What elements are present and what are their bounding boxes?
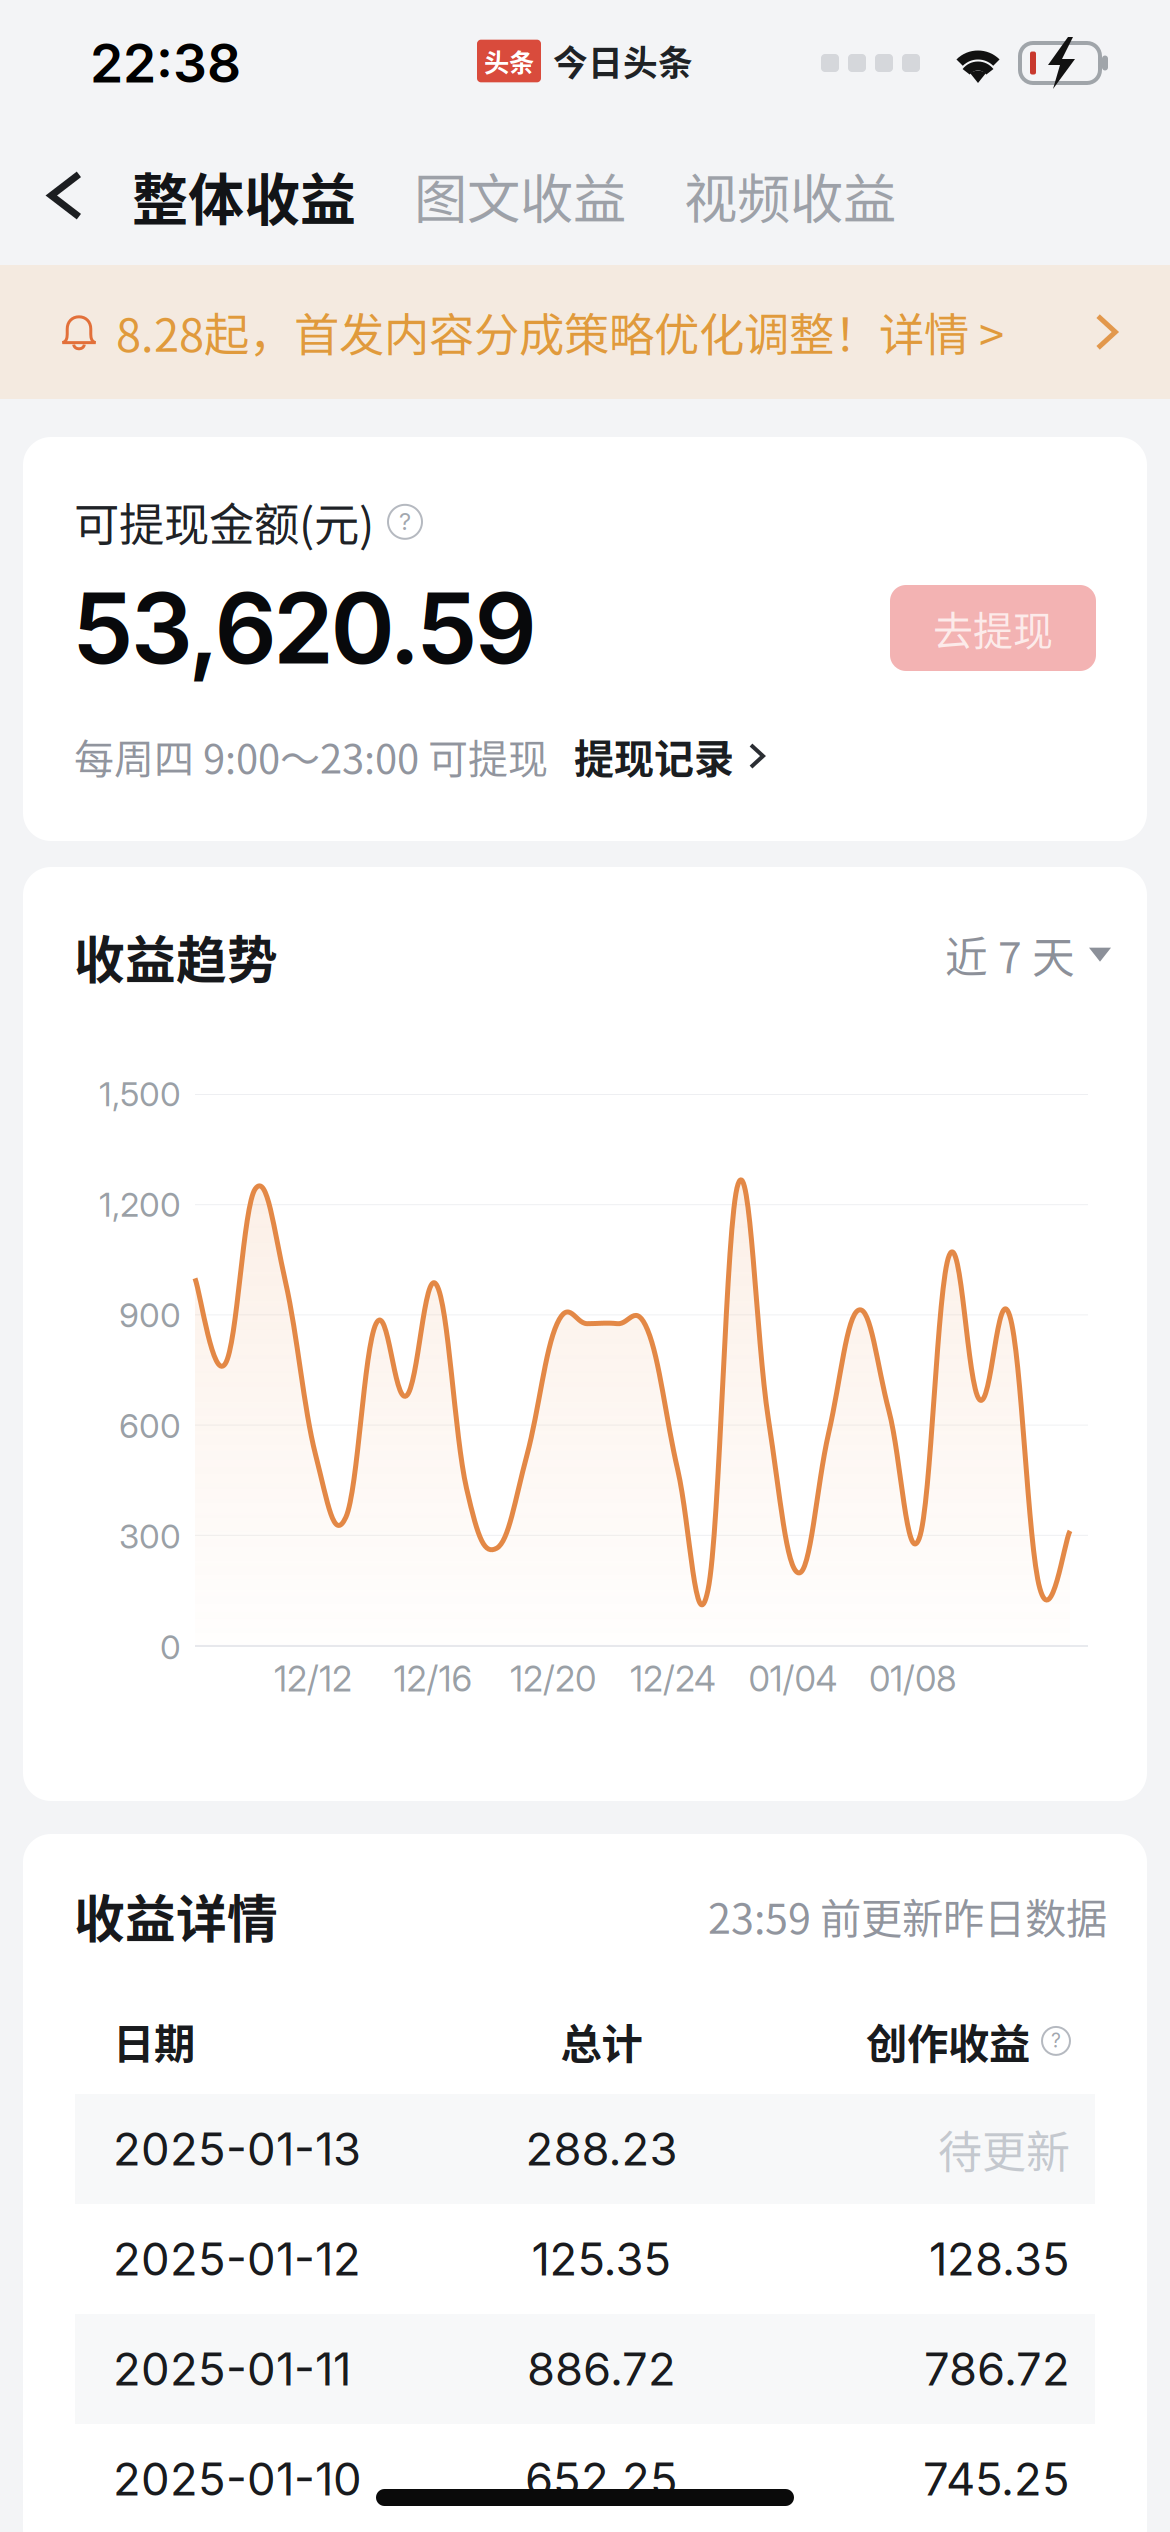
staticText: 12/24 (630, 1658, 716, 1700)
staticText: 22:38 (90, 31, 241, 95)
staticText: 2025-01-10 (113, 2452, 362, 2506)
staticText: ? (399, 507, 411, 536)
staticText: 900 (119, 1295, 181, 1335)
button[interactable]: Back (0, 126, 132, 265)
staticText: 可提现金额(元) (74, 489, 374, 555)
staticText: 600 (119, 1406, 181, 1446)
staticText: 12/16 (393, 1658, 472, 1700)
staticText: 01/04 (748, 1658, 837, 1700)
staticText: 收益趋势 (74, 920, 278, 993)
button[interactable]: 图文收益 (414, 126, 626, 265)
button[interactable]: 视频收益 (684, 126, 896, 265)
staticText: 652.25 (525, 2452, 678, 2506)
staticText: 创作收益 (866, 2011, 1030, 2071)
staticText: 786.72 (924, 2342, 1070, 2396)
staticText: 128.35 (929, 2232, 1070, 2286)
button[interactable]: 整体收益 (132, 126, 356, 265)
staticText: 整体收益 (132, 155, 356, 236)
staticText: 近 7 天 (945, 924, 1075, 986)
staticText: 头条 (484, 43, 534, 79)
staticText: 23:59 前更新昨日数据 (708, 1886, 1107, 1946)
staticText: 图文收益 (414, 157, 626, 234)
staticText: 886.72 (527, 2342, 676, 2396)
staticText: 日期 (113, 2011, 195, 2071)
button[interactable]: 去提现 (890, 585, 1096, 671)
staticText: 125.35 (531, 2232, 671, 2286)
staticText: 提现记录 (574, 727, 734, 785)
staticText: 每周四 9:00〜23:00 可提现 (74, 727, 548, 785)
staticText: 8.28起，首发内容分成策略优化调整！详情 > (116, 299, 1004, 365)
staticText: 2025-01-11 (113, 2342, 351, 2396)
staticText: 0 (160, 1627, 181, 1667)
staticText: 收益详情 (74, 1879, 278, 1952)
staticText: 视频收益 (684, 157, 896, 234)
staticText: 300 (119, 1516, 181, 1556)
button[interactable]: 提现记录 (574, 727, 769, 785)
staticText: 53,620.59 (74, 569, 535, 687)
staticText: 待更新 (938, 2117, 1070, 2181)
staticText: 12/12 (274, 1658, 352, 1700)
staticText: 01/08 (869, 1658, 957, 1700)
staticText: 2025-01-13 (113, 2122, 361, 2176)
staticText: 1,500 (99, 1074, 181, 1114)
staticText: 总计 (560, 2011, 642, 2071)
staticText: 12/20 (510, 1658, 596, 1700)
button[interactable]: 近 7 天 (945, 924, 1111, 990)
staticText: ? (1051, 2029, 1061, 2052)
staticText: 去提现 (933, 599, 1053, 657)
staticText: 745.25 (923, 2452, 1070, 2506)
staticText: 2025-01-12 (113, 2232, 361, 2286)
staticText: 今日头条 (553, 36, 693, 86)
staticText: 1,200 (99, 1184, 181, 1225)
staticText: 288.23 (525, 2122, 677, 2176)
button[interactable]: 8.28起，首发内容分成策略优化调整！详情 > (0, 265, 1170, 399)
